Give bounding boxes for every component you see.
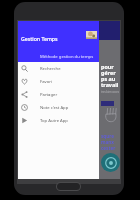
button[interactable]: Recherche (18, 62, 99, 75)
button[interactable]: Gestion Temps (21, 35, 58, 42)
button[interactable]: Note c'est App (18, 101, 99, 114)
button[interactable]: Favori (18, 75, 99, 88)
staticText: squre manx cester (101, 133, 116, 151)
staticText: Méthode gestion du temps (40, 54, 94, 60)
staticText: Top Autre App (40, 118, 68, 124)
button[interactable]: Partager (18, 88, 99, 101)
button[interactable]: Méthode gestion du temps (40, 52, 94, 62)
staticText: Partager (40, 92, 58, 98)
staticText: Favori (40, 79, 52, 85)
staticText: tres bien acces (101, 90, 119, 94)
staticText: Note c'est App (40, 105, 69, 111)
staticText: Recherche (40, 66, 61, 72)
staticText: pour gérer ps au travail (101, 63, 119, 88)
button[interactable]: Top Autre App (18, 114, 99, 127)
